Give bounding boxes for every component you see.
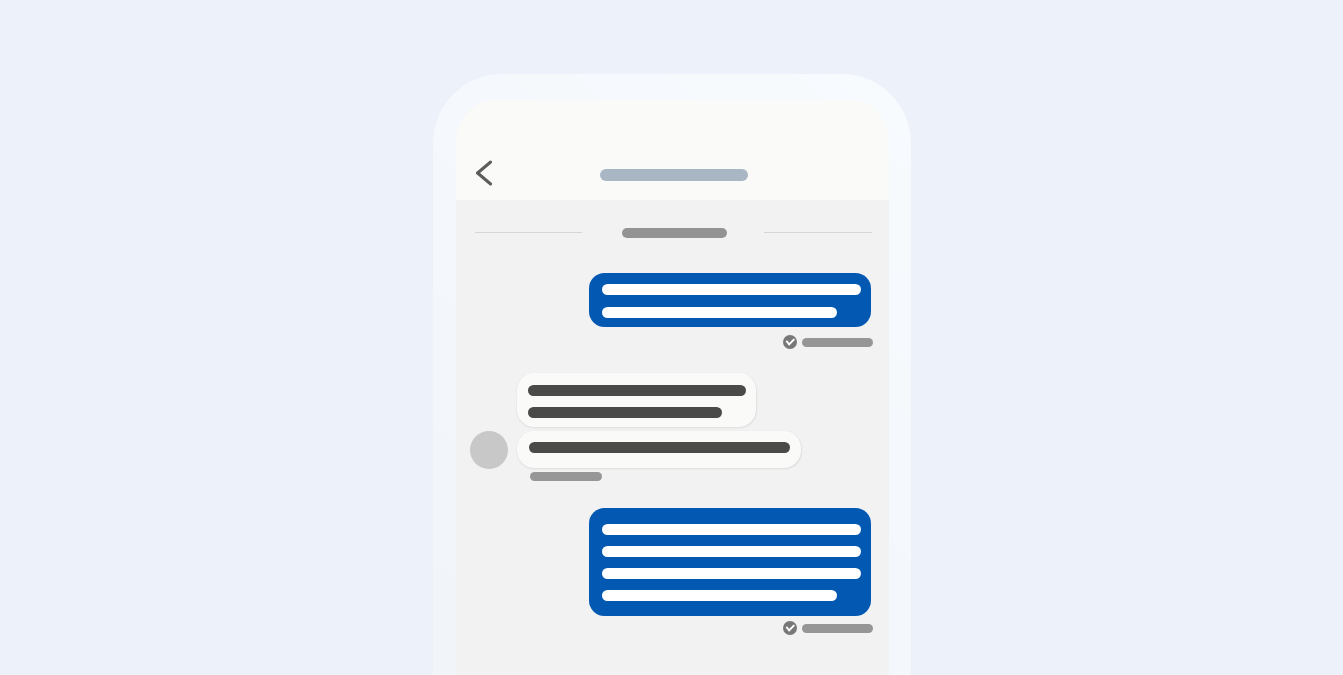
button[interactable]: Date <box>622 228 727 238</box>
button[interactable]: Back <box>461 151 507 195</box>
button[interactable] <box>589 273 871 327</box>
button[interactable]: Conversation title <box>600 169 748 181</box>
button[interactable] <box>517 373 756 427</box>
button[interactable] <box>517 431 801 468</box>
button[interactable]: Message read <box>783 335 873 349</box>
button[interactable]: Message read <box>783 621 873 635</box>
button[interactable] <box>589 508 871 616</box>
button[interactable]: Contact avatar <box>470 431 508 469</box>
